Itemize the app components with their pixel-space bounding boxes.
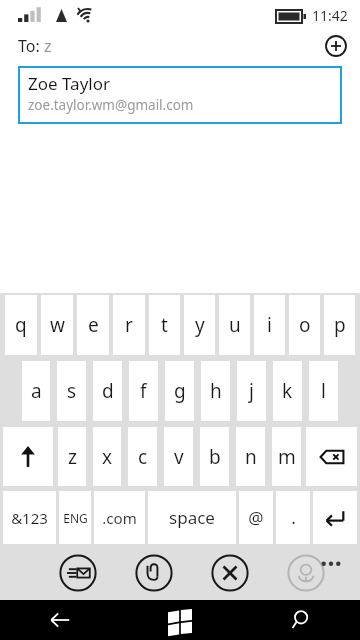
button[interactable]: Send: [58, 553, 98, 593]
staticText: z: [44, 35, 52, 57]
button[interactable]: Search: [270, 600, 330, 640]
button[interactable]: Enter: [313, 491, 357, 544]
staticText: space: [169, 506, 215, 529]
staticText: @: [248, 506, 264, 529]
staticText: .com: [102, 508, 137, 528]
button[interactable]: q: [5, 295, 37, 355]
button[interactable]: @: [239, 491, 273, 544]
button[interactable]: More: [316, 554, 346, 584]
button[interactable]: Back: [30, 600, 90, 640]
button[interactable]: e: [77, 295, 109, 355]
staticText: n: [245, 444, 257, 470]
staticText: zoe.taylor.wm@gmail.com: [28, 96, 194, 114]
staticText: u: [229, 312, 241, 338]
staticText: r: [125, 312, 133, 338]
button[interactable]: b: [200, 427, 229, 486]
button[interactable]: h: [201, 361, 230, 421]
button[interactable]: j: [237, 361, 266, 421]
button[interactable]: Voice: [286, 553, 326, 593]
staticText: k: [282, 378, 293, 404]
staticText: v: [174, 444, 184, 470]
staticText: &123: [11, 508, 48, 528]
button[interactable]: w: [41, 295, 73, 355]
staticText: l: [321, 378, 326, 404]
staticText: d: [102, 378, 114, 404]
button[interactable]: u: [219, 295, 250, 355]
staticText: t: [161, 312, 168, 338]
button[interactable]: v: [164, 427, 193, 486]
staticText: .: [291, 506, 296, 529]
button[interactable]: .com: [94, 491, 145, 544]
staticText: g: [174, 378, 186, 404]
button[interactable]: d: [93, 361, 122, 421]
staticText: z: [68, 444, 77, 470]
button[interactable]: l: [309, 361, 338, 421]
button[interactable]: g: [165, 361, 194, 421]
button[interactable]: space: [148, 491, 236, 544]
button[interactable]: k: [273, 361, 302, 421]
button[interactable]: x: [93, 427, 121, 486]
button[interactable]: Zoe Taylor: [18, 66, 342, 124]
staticText: f: [140, 378, 147, 404]
button[interactable]: c: [128, 427, 157, 486]
staticText: i: [267, 312, 272, 338]
button[interactable]: ENG: [59, 491, 91, 544]
staticText: x: [102, 444, 113, 470]
button[interactable]: t: [149, 295, 180, 355]
staticText: 11:42: [312, 6, 348, 25]
button[interactable]: Shift: [3, 427, 53, 486]
button[interactable]: f: [129, 361, 158, 421]
staticText: ENG: [63, 510, 88, 526]
button[interactable]: o: [289, 295, 320, 355]
button[interactable]: n: [236, 427, 265, 486]
staticText: p: [334, 312, 346, 338]
staticText: a: [31, 378, 42, 404]
button[interactable]: z: [58, 427, 86, 486]
staticText: o: [299, 312, 311, 338]
button[interactable]: i: [254, 295, 285, 355]
button[interactable]: Start: [150, 600, 210, 640]
button[interactable]: p: [324, 295, 355, 355]
staticText: m: [278, 444, 296, 470]
button[interactable]: Close: [210, 553, 250, 593]
staticText: h: [210, 378, 222, 404]
button[interactable]: y: [184, 295, 215, 355]
button[interactable]: a: [22, 361, 50, 421]
button[interactable]: m: [272, 427, 301, 486]
button[interactable]: &123: [3, 491, 56, 544]
button[interactable]: s: [57, 361, 86, 421]
button[interactable]: Attach: [134, 553, 174, 593]
staticText: e: [88, 312, 99, 338]
staticText: b: [209, 444, 221, 470]
staticText: y: [195, 312, 205, 338]
staticText: j: [249, 378, 254, 404]
staticText: To:: [18, 35, 44, 57]
staticText: q: [15, 312, 27, 338]
staticText: c: [138, 444, 148, 470]
staticText: w: [50, 312, 65, 338]
button[interactable]: Backspace: [306, 427, 357, 486]
button[interactable]: .: [276, 491, 310, 544]
staticText: s: [67, 378, 77, 404]
button[interactable]: Add recipient: [320, 30, 352, 62]
button[interactable]: r: [113, 295, 145, 355]
staticText: Zoe Taylor: [28, 72, 111, 95]
